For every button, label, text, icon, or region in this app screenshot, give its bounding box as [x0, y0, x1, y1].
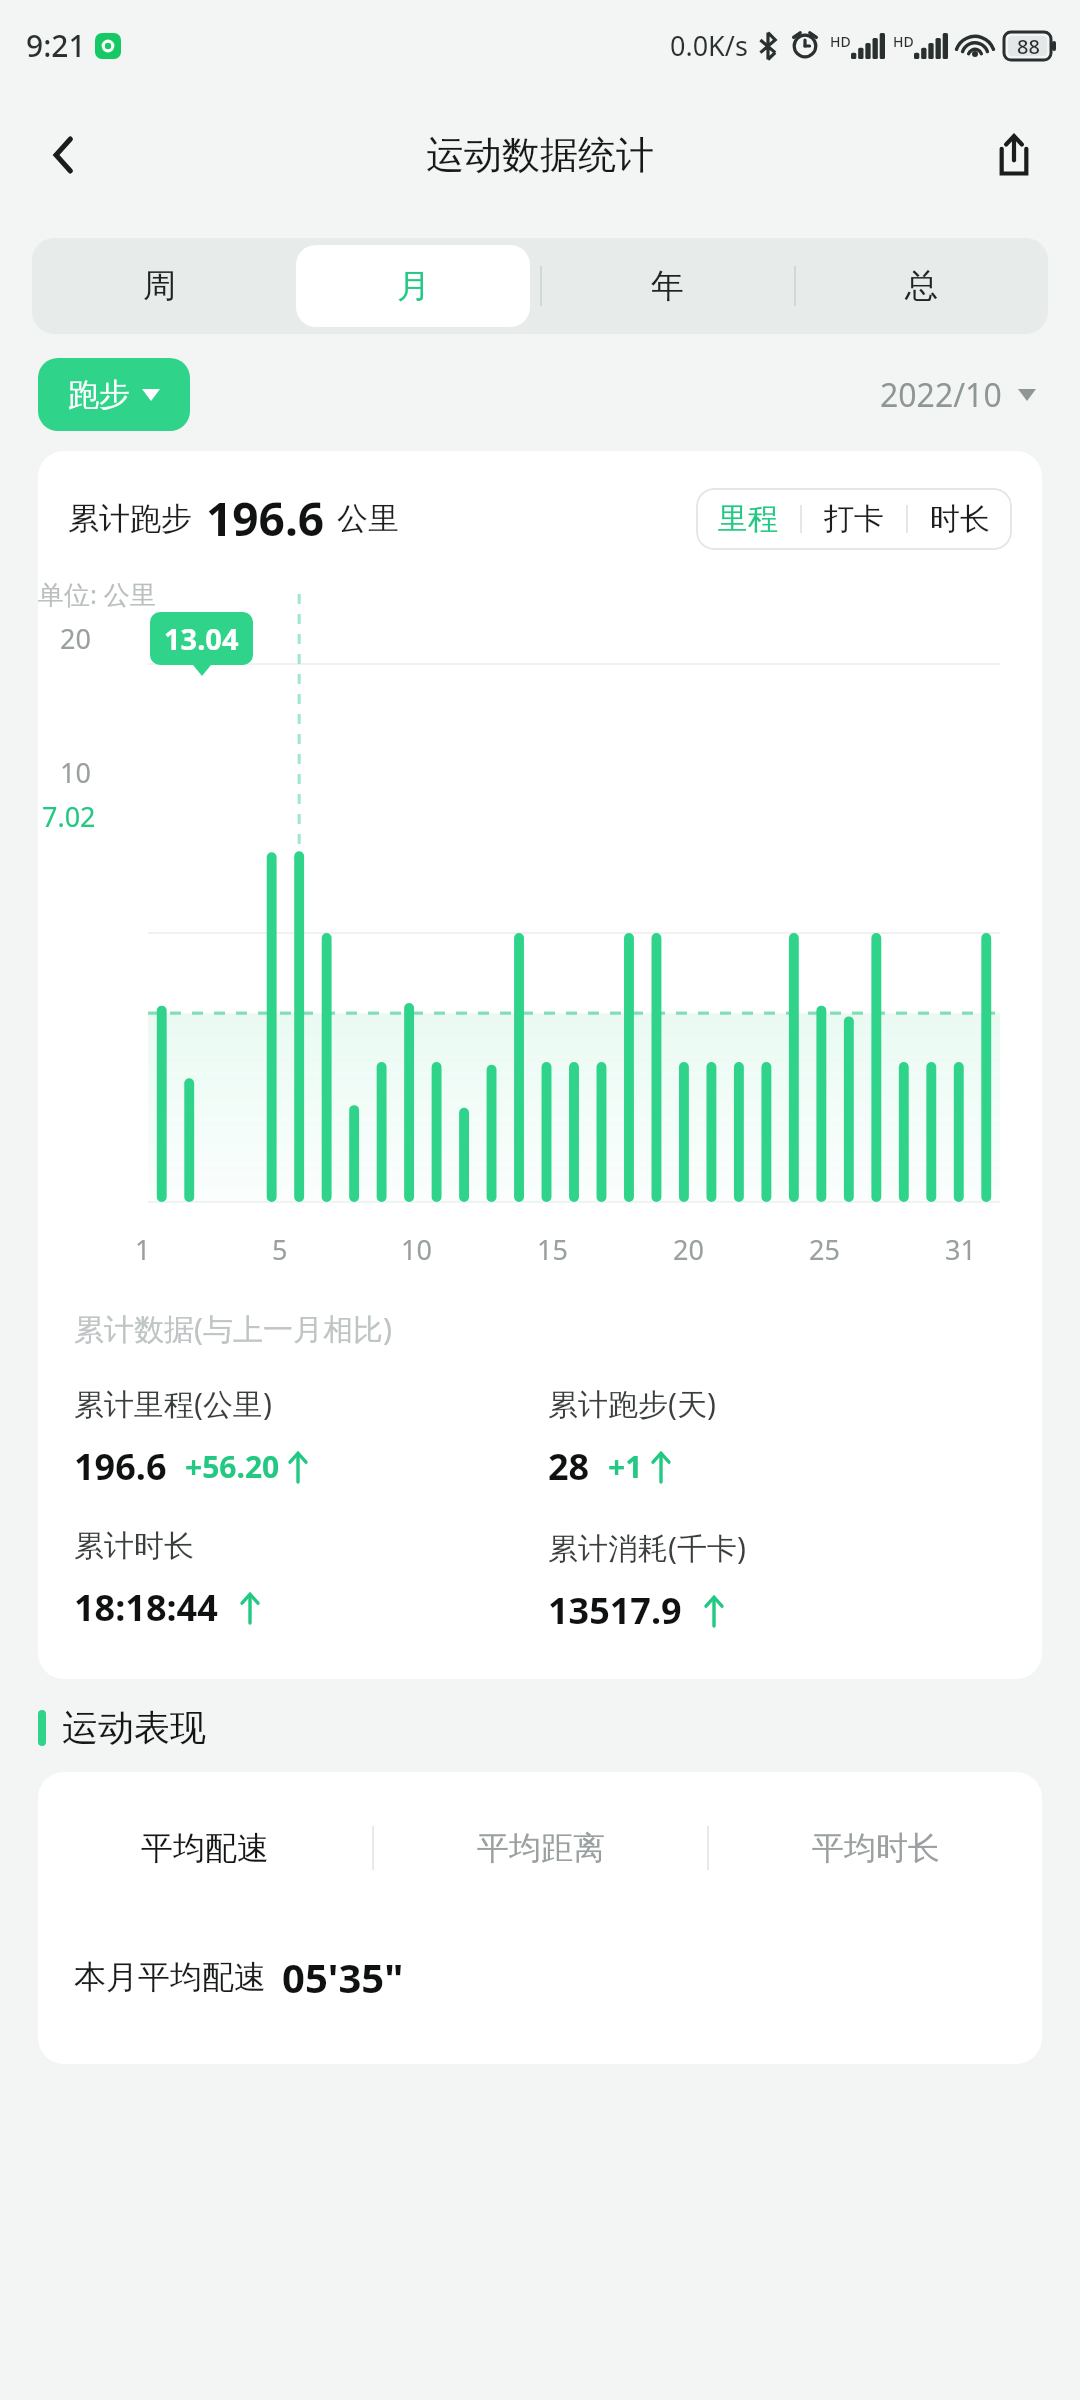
staticText: 累计跑步 [68, 499, 192, 538]
staticText: +1 [608, 1446, 643, 1487]
staticText: 累计跑步(天) [548, 1383, 716, 1424]
staticText: HD [893, 32, 914, 51]
staticText: 平均时长 [812, 1828, 940, 1868]
staticText: 1 [135, 1231, 151, 1268]
staticText: 20 [673, 1231, 704, 1268]
staticText: HD [830, 32, 851, 51]
staticText: 7.02 [42, 798, 96, 835]
staticText: 累计数据(与上一月相比) [74, 1308, 392, 1349]
button[interactable]: 平均配速 [38, 1820, 372, 1876]
button[interactable]: 里程 [696, 488, 800, 550]
staticText: 总 [905, 265, 938, 307]
staticText: 累计里程(公里) [74, 1383, 272, 1424]
staticText: 18:18:44 [74, 1583, 218, 1632]
staticText: 本月平均配速 [74, 1957, 266, 1997]
staticText: 5 [272, 1231, 288, 1268]
button[interactable]: 2022/10 [874, 367, 1042, 423]
staticText: 20 [60, 620, 91, 657]
staticText: 0.0K/s [670, 27, 748, 64]
staticText: 88 [1017, 33, 1040, 60]
button[interactable]: 总 [804, 245, 1038, 327]
staticText: +56.20 [185, 1446, 280, 1487]
button[interactable]: 月 [296, 245, 530, 327]
staticText: 平均配速 [141, 1828, 269, 1868]
staticText: 运动数据统计 [426, 131, 654, 179]
button[interactable]: Back [24, 115, 104, 195]
staticText: 时长 [930, 500, 990, 538]
staticText: 周 [143, 265, 176, 307]
staticText: 25 [809, 1231, 840, 1268]
button[interactable]: 周 [42, 245, 276, 327]
staticText: 累计时长 [74, 1527, 194, 1565]
staticText: 9:21 [26, 25, 86, 66]
staticText: 196.6 [206, 487, 325, 550]
staticText: 累计消耗(千卡) [548, 1527, 746, 1568]
button[interactable]: Share [974, 115, 1054, 195]
staticText: 05'35" [282, 1950, 404, 2004]
button[interactable]: 平均距离 [374, 1820, 707, 1876]
staticText: 里程 [718, 500, 778, 538]
staticText: 打卡 [824, 500, 884, 538]
staticText: 跑步 [68, 375, 130, 414]
button[interactable]: 时长 [908, 488, 1012, 550]
staticText: 10 [401, 1231, 432, 1268]
button[interactable]: 年 [550, 245, 784, 327]
button[interactable]: 跑步 [38, 358, 190, 431]
button[interactable]: 打卡 [802, 488, 906, 550]
staticText: 公里 [337, 499, 399, 538]
staticText: 28 [548, 1442, 590, 1491]
staticText: 13517.9 [548, 1586, 682, 1635]
staticText: 31 [945, 1231, 976, 1268]
staticText: 13.04 [164, 619, 239, 658]
staticText: 2022/10 [880, 373, 1002, 417]
staticText: 年 [651, 265, 684, 307]
button[interactable]: 平均时长 [709, 1820, 1042, 1876]
staticText: 平均距离 [477, 1828, 605, 1868]
staticText: 单位: 公里 [38, 576, 1002, 612]
staticText: 196.6 [74, 1442, 167, 1491]
staticText: 10 [60, 754, 91, 791]
staticText: 15 [537, 1231, 568, 1268]
staticText: 月 [397, 265, 430, 307]
staticText: 运动表现 [62, 1705, 206, 1750]
